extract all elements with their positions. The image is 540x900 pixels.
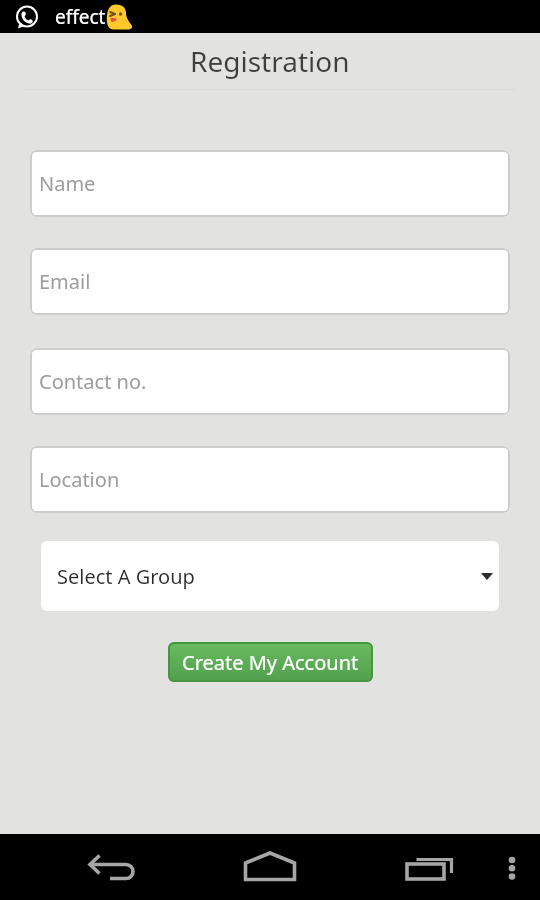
staticText: Name bbox=[39, 170, 96, 197]
staticText: effect bbox=[55, 4, 106, 30]
staticText: Email bbox=[39, 268, 91, 295]
staticText: Contact no. bbox=[39, 368, 147, 395]
staticText: Registration bbox=[190, 42, 350, 80]
staticText: Select A Group bbox=[57, 563, 195, 590]
staticText: Create My Account bbox=[182, 649, 359, 676]
staticText: Location bbox=[39, 466, 120, 493]
